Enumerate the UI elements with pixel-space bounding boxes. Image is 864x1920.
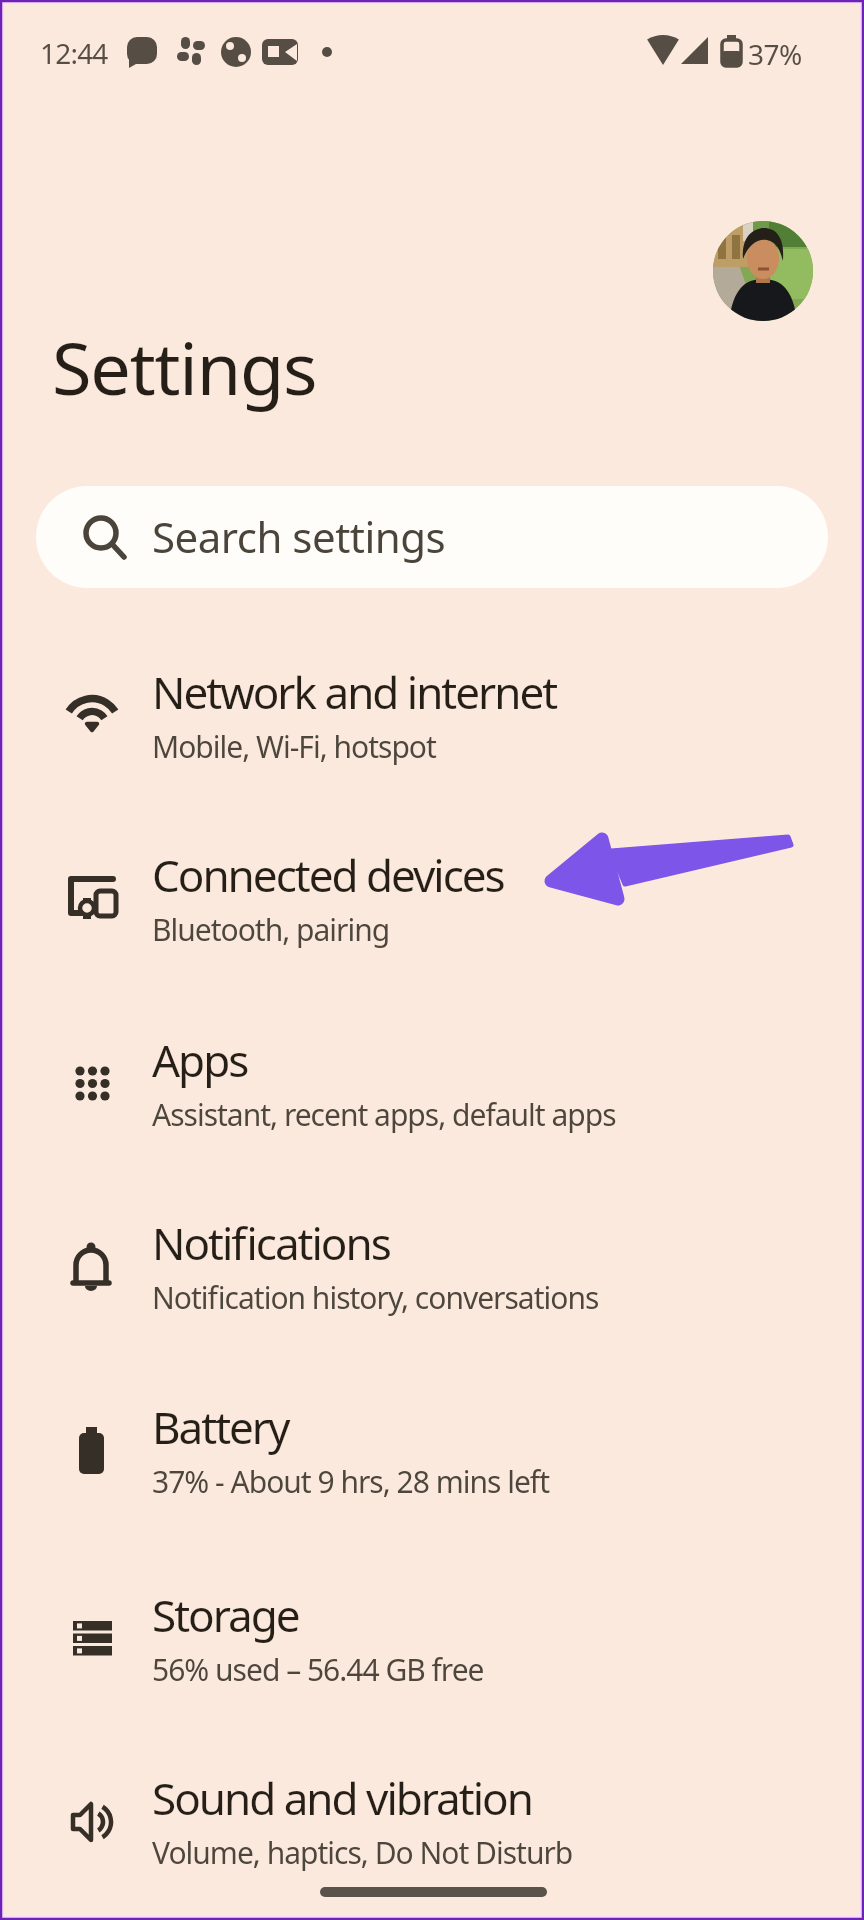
button[interactable]: Sound and vibration	[0, 1740, 864, 1900]
staticText: Battery	[152, 1397, 289, 1457]
button[interactable]: Notifications	[0, 1185, 864, 1345]
staticText: Notification history, conversations	[152, 1277, 599, 1318]
button[interactable]	[713, 221, 813, 321]
staticText: Network and internet	[152, 662, 557, 722]
staticText: Storage	[152, 1585, 299, 1645]
staticText: Search settings	[152, 508, 446, 565]
staticText: Sound and vibration	[152, 1768, 532, 1828]
staticText: Settings	[52, 318, 317, 416]
staticText: 37%	[748, 35, 802, 73]
staticText: Bluetooth, pairing	[152, 909, 390, 950]
staticText: Apps	[152, 1030, 248, 1090]
staticText: 37% - About 9 hrs, 28 mins left	[152, 1461, 549, 1502]
button[interactable]: Connected devices	[0, 817, 864, 977]
staticText: 12:44	[40, 34, 108, 72]
button[interactable]: Network and internet	[0, 634, 864, 794]
staticText: Volume, haptics, Do Not Disturb	[152, 1832, 573, 1873]
staticText: 56% used – 56.44 GB free	[152, 1649, 484, 1690]
button[interactable]: Search settings	[36, 486, 828, 588]
staticText: Notifications	[152, 1213, 390, 1273]
staticText: Mobile, Wi-Fi, hotspot	[152, 726, 436, 767]
staticText: Connected devices	[152, 845, 504, 905]
button[interactable]: Apps	[0, 1002, 864, 1162]
staticText: Assistant, recent apps, default apps	[152, 1094, 616, 1135]
button[interactable]: Battery	[0, 1369, 864, 1529]
button[interactable]: Storage	[0, 1557, 864, 1717]
